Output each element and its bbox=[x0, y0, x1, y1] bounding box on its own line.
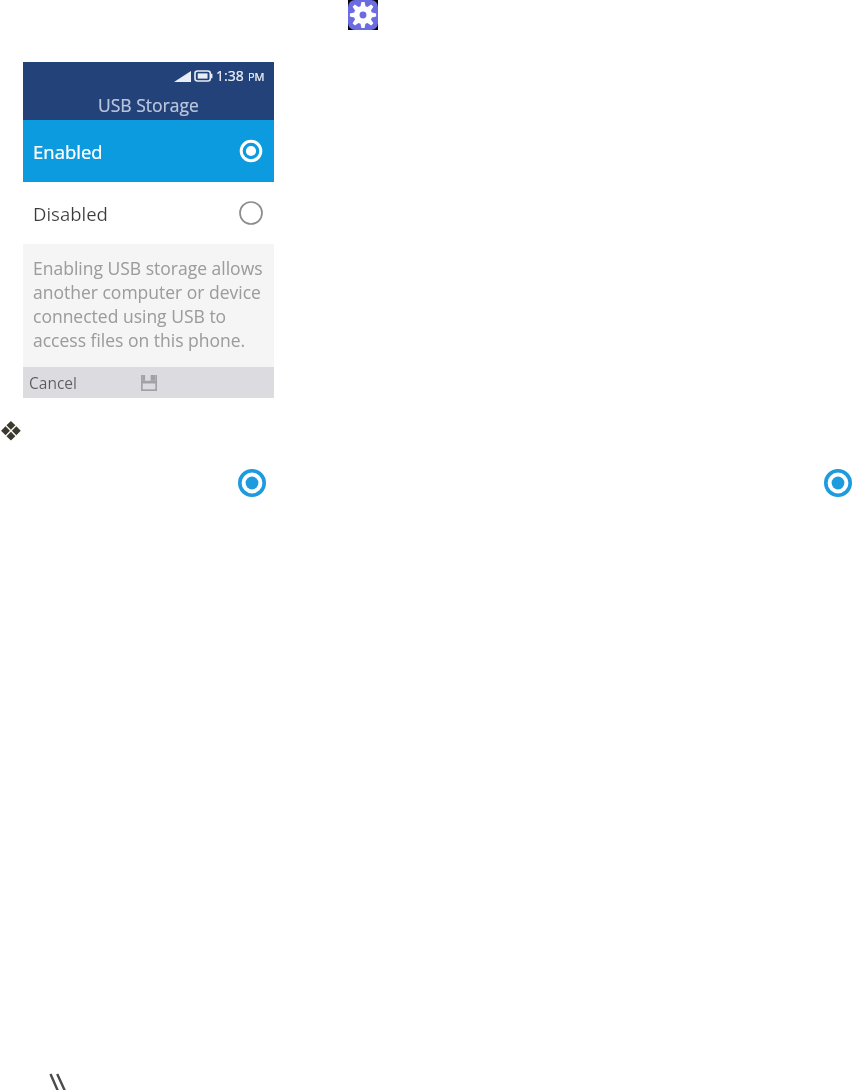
button[interactable]: Disabled bbox=[23, 182, 274, 244]
button[interactable]: Enabled bbox=[23, 120, 274, 182]
staticText: Cancel bbox=[29, 372, 77, 393]
staticText: 1:38 bbox=[216, 66, 248, 85]
staticText: PM bbox=[248, 69, 265, 84]
button[interactable]: Selected option bbox=[823, 468, 853, 498]
staticText: Enabling USB storage allows another comp… bbox=[33, 256, 263, 352]
button[interactable]: Settings bbox=[348, 0, 378, 30]
button[interactable]: Save bbox=[138, 372, 160, 394]
button[interactable]: Selected option bbox=[237, 468, 267, 498]
staticText: Enabled bbox=[33, 139, 103, 164]
staticText: Disabled bbox=[33, 201, 108, 226]
button[interactable]: Cancel bbox=[23, 367, 86, 398]
staticText: USB Storage bbox=[98, 93, 199, 117]
